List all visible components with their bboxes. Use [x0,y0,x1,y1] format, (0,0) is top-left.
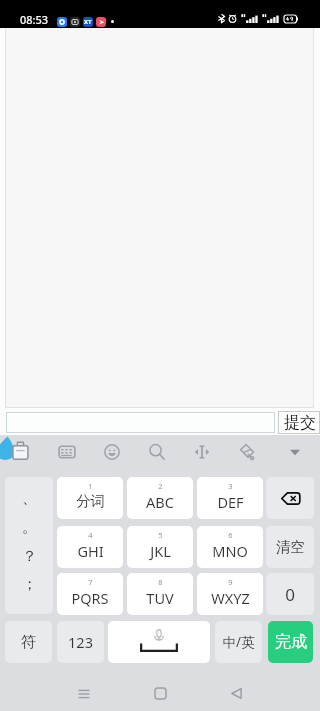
button[interactable]: Move cursor [193,443,211,461]
staticText: 3 [228,481,233,491]
staticText: 符 [21,633,36,652]
staticText: 9 [228,577,233,587]
button[interactable]: 8 [127,573,193,615]
staticText: 7 [88,577,93,587]
staticText: GHI [77,541,104,561]
staticText: 完成 [275,632,307,652]
staticText: ？ [22,547,37,566]
staticText: 。 [22,518,37,537]
button[interactable]: 9 [197,573,263,615]
staticText: XT [84,18,92,26]
staticText: PQRS [71,588,109,608]
staticText: ABC [146,492,174,512]
button[interactable]: Space, voice input [108,621,210,663]
button[interactable]: 符 [5,621,52,663]
staticText: 8 [158,577,163,587]
button[interactable]: 1 [57,477,123,519]
other: Space, voice input [140,628,178,656]
button[interactable]: 5 [127,526,193,568]
button[interactable]: 4 [57,526,123,568]
button[interactable]: 0 [266,573,314,615]
button[interactable]: 提交 [278,411,320,434]
button[interactable]: 123 [57,621,104,663]
button[interactable]: Input method logo [0,436,32,463]
other: Backspace [281,492,300,505]
staticText: 清空 [276,538,305,556]
staticText: 4 [88,530,93,540]
staticText: TUV [146,588,174,608]
button[interactable] [6,412,275,433]
staticText: DEF [217,492,244,512]
staticText: 中/英 [222,633,255,651]
staticText: 5 [158,530,163,540]
other: Input method logo [0,436,32,463]
staticText: 、 [22,489,37,508]
button[interactable]: 6 [197,526,263,568]
button[interactable]: Collapse keyboard [286,443,304,461]
staticText: 2 [158,481,163,491]
button[interactable]: 2 [127,477,193,519]
button[interactable]: Recents [64,676,104,711]
staticText: 0 [285,583,295,606]
staticText: 6 [228,530,233,540]
staticText: MNO [212,541,248,561]
staticText: JKL [150,541,171,561]
staticText: ； [22,575,37,594]
staticText: WXYZ [211,588,250,608]
staticText: 1 [88,481,93,491]
button[interactable]: 清空 [266,526,314,568]
button[interactable]: Theme [237,443,255,461]
button[interactable]: 中/英 [215,621,262,663]
button[interactable]: Home [140,676,180,711]
button[interactable]: Back [216,676,256,711]
button[interactable]: 完成 [268,621,313,663]
button[interactable]: Emoji [103,443,121,461]
button[interactable]: Backspace [266,477,314,519]
button[interactable]: Keyboard [58,443,76,461]
staticText: 分词 [76,492,105,510]
button[interactable]: 3 [197,477,263,519]
button[interactable]: Search [148,443,166,461]
staticText: 提交 [284,413,316,433]
staticText: 08:53 [20,12,49,27]
staticText: 123 [68,632,93,652]
button[interactable]: 、 [5,477,53,614]
button[interactable]: 7 [57,573,123,615]
